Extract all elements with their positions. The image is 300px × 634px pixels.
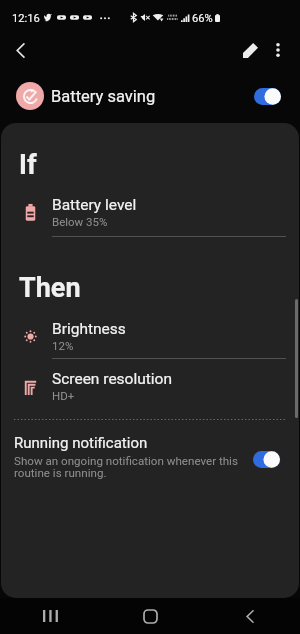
- button[interactable]: Running notification: [1, 434, 299, 479]
- staticText: Brightness: [52, 320, 126, 338]
- staticText: Battery saving: [51, 87, 156, 106]
- button[interactable]: On: [254, 88, 281, 105]
- staticText: If: [19, 149, 37, 181]
- button[interactable]: Battery saving: [0, 72, 300, 120]
- staticText: Below 35%: [52, 215, 108, 228]
- staticText: 12:16: [12, 12, 40, 25]
- button[interactable]: More options: [263, 35, 293, 65]
- button[interactable]: Home: [100, 598, 200, 634]
- button[interactable]: On: [253, 451, 280, 468]
- staticText: Screen resolution: [52, 370, 172, 388]
- button[interactable]: Screen resolution: [1, 364, 299, 406]
- staticText: Show an ongoing notification whenever th…: [14, 454, 241, 479]
- staticText: HD+: [52, 389, 75, 402]
- staticText: 66%: [192, 12, 213, 25]
- staticText: Then: [19, 272, 81, 304]
- button[interactable]: Brightness: [1, 314, 299, 356]
- staticText: 12%: [52, 339, 74, 352]
- button[interactable]: Recent apps: [0, 598, 100, 634]
- button[interactable]: Back: [200, 598, 300, 634]
- staticText: Battery level: [52, 196, 137, 214]
- button[interactable]: Navigate up: [5, 35, 35, 65]
- button[interactable]: Edit: [235, 35, 265, 65]
- button[interactable]: Battery level: [1, 190, 299, 232]
- staticText: Running notification: [14, 434, 148, 452]
